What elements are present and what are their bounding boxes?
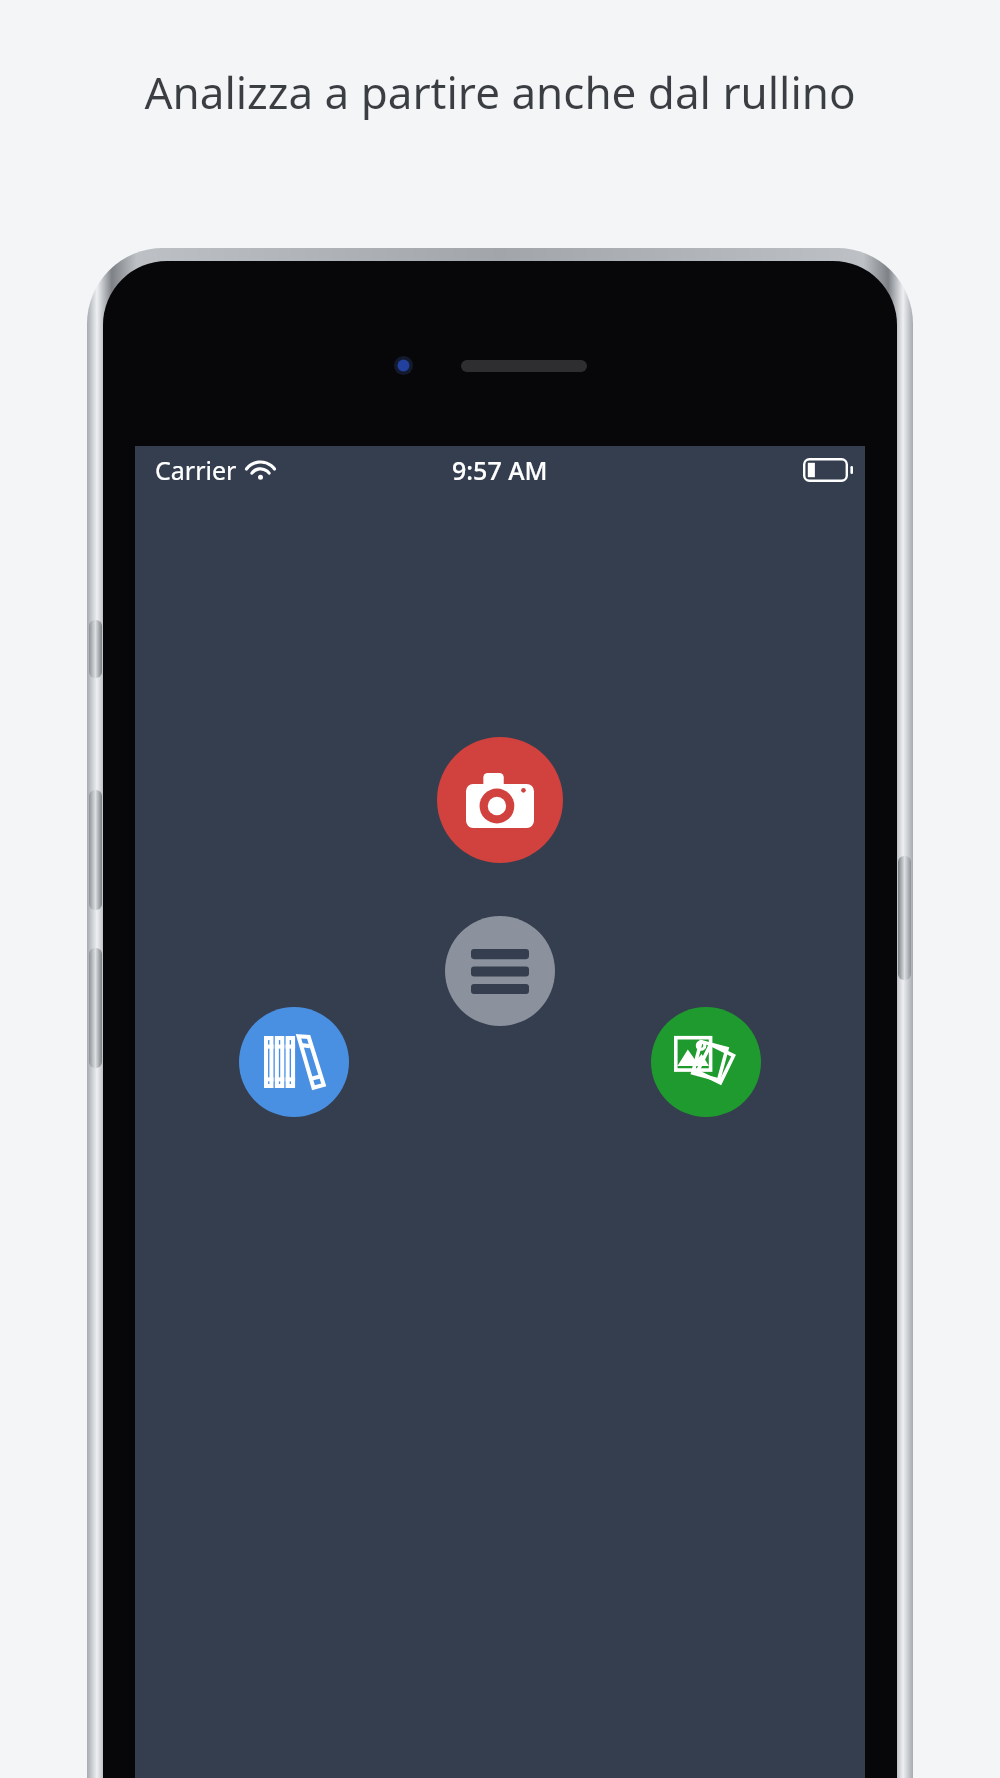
staticText: Carrier [155,453,237,487]
button[interactable]: Rullino foto [651,1007,761,1117]
button[interactable]: Menu [445,916,555,1026]
button[interactable]: Scatta foto [437,737,563,863]
button[interactable]: Libreria [239,1007,349,1117]
staticText: 9:57 AM [452,453,548,487]
staticText: Analizza a partire anche dal rullino [115,62,885,122]
